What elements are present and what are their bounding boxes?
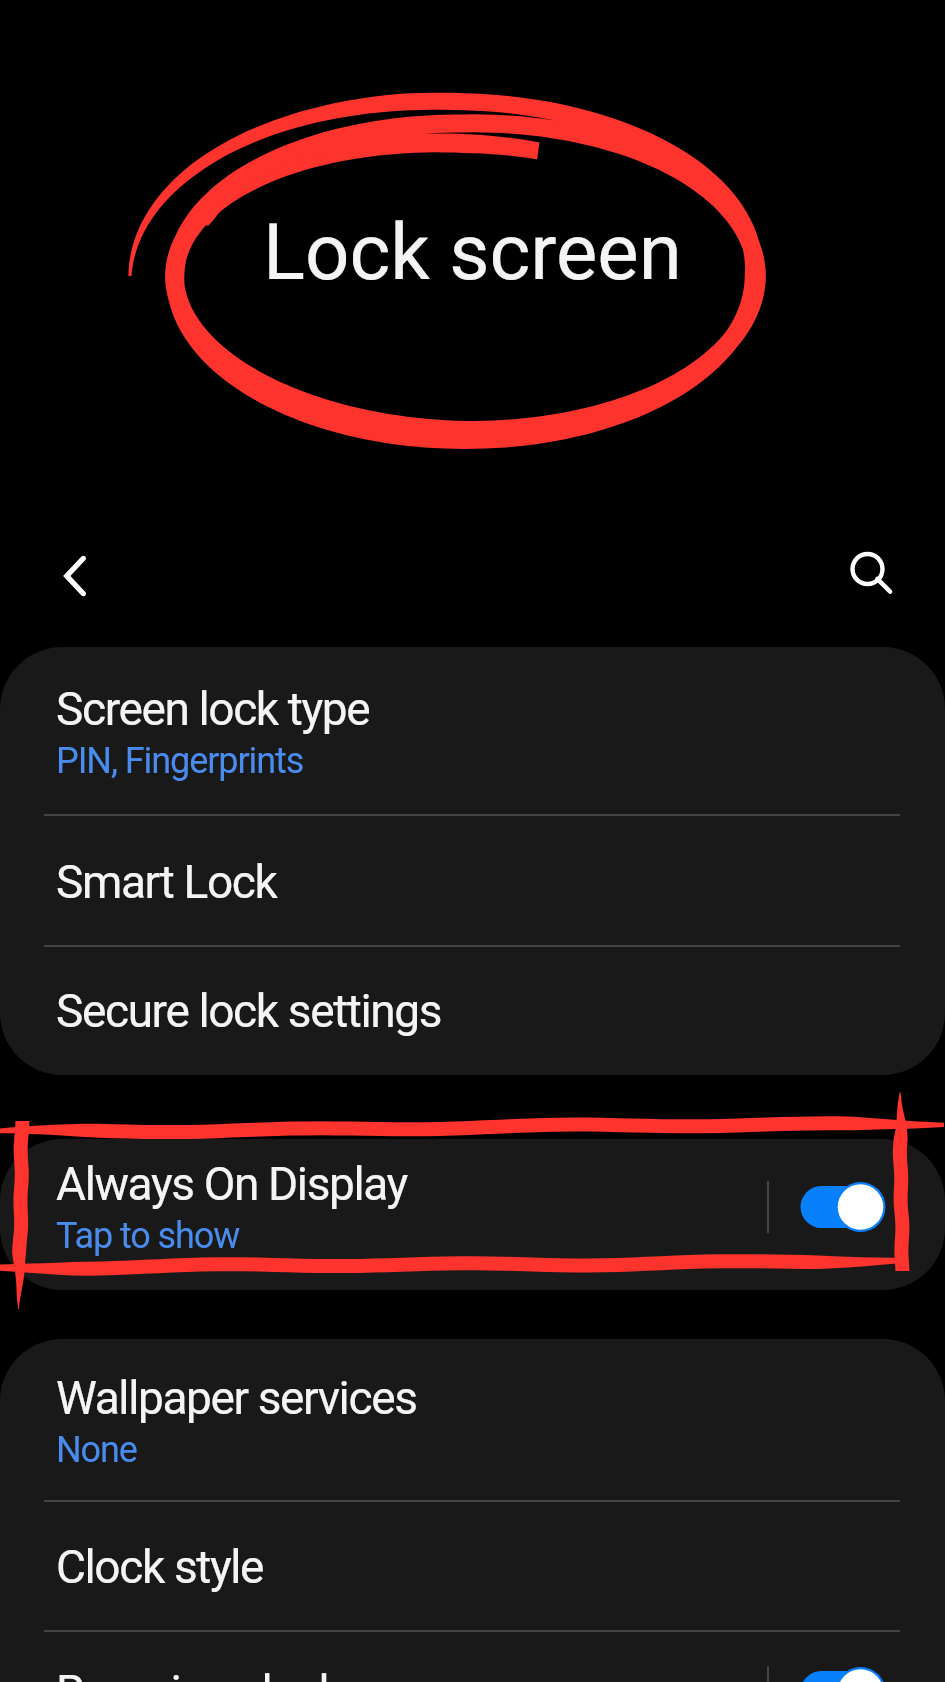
staticText: Lock screen [263,207,682,298]
button[interactable]: Wallpaper services [0,1339,945,1502]
button[interactable]: Always On Display [0,1139,945,1290]
staticText: Roaming clock [56,1665,341,1682]
staticText: None [56,1429,137,1471]
staticText: Tap to show [56,1215,240,1257]
staticText: Smart Lock [56,855,277,909]
staticText: PIN, Fingerprints [56,740,304,782]
button[interactable]: Search [825,530,913,618]
button[interactable]: Screen lock type [0,647,945,816]
staticText: Clock style [56,1540,264,1594]
staticText: Secure lock settings [56,984,442,1038]
button[interactable]: Smart Lock [0,816,945,947]
button[interactable]: Roaming clock [0,1632,945,1682]
button[interactable]: Clock style [0,1502,945,1632]
button[interactable]: Navigate back [31,532,119,620]
staticText: Always On Display [56,1157,407,1211]
button[interactable]: Secure lock settings [0,947,945,1075]
staticText: Wallpaper services [56,1371,417,1425]
button[interactable]: Roaming clock toggle [769,1632,945,1682]
button[interactable]: Always On Display toggle [769,1139,945,1274]
staticText: Screen lock type [56,682,370,736]
